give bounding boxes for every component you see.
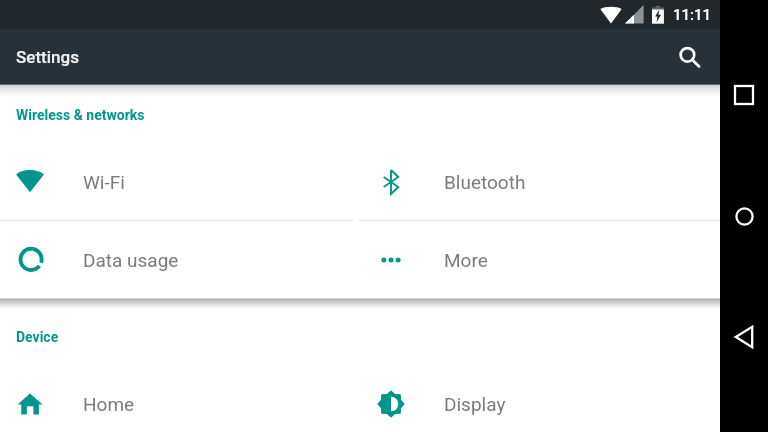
staticText: 11:11 xyxy=(673,6,712,24)
staticText: Device xyxy=(16,329,59,345)
button[interactable]: Home xyxy=(0,366,360,432)
button[interactable]: Search xyxy=(664,33,712,81)
staticText: Home xyxy=(83,393,135,415)
button[interactable]: Back xyxy=(723,316,765,358)
button[interactable]: Wi-Fi xyxy=(0,144,360,220)
button[interactable]: Display xyxy=(361,366,721,432)
staticText: Wireless & networks xyxy=(16,107,145,123)
staticText: Settings xyxy=(16,47,79,67)
button[interactable]: Data usage xyxy=(0,222,360,298)
button[interactable]: More xyxy=(361,222,721,298)
staticText: Bluetooth xyxy=(444,171,526,193)
button[interactable]: Home xyxy=(723,195,765,237)
staticText: Display xyxy=(444,393,506,415)
button[interactable]: Recents xyxy=(723,74,765,116)
staticText: Wi-Fi xyxy=(83,171,125,193)
staticText: Data usage xyxy=(83,249,179,271)
staticText: More xyxy=(444,249,488,271)
button[interactable]: Bluetooth xyxy=(361,144,721,220)
